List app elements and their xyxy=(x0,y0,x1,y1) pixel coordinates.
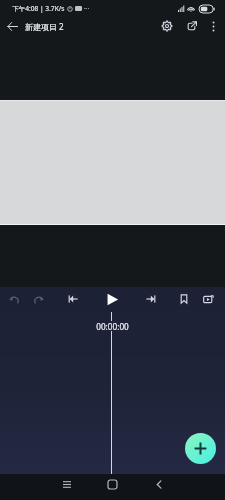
staticText: 下午4:08 | 3.7K/s xyxy=(12,4,65,13)
button[interactable]: Settings xyxy=(157,16,177,36)
staticText: 00:00:00 xyxy=(96,321,129,331)
button[interactable]: More options xyxy=(205,18,221,34)
button[interactable]: Play xyxy=(102,289,122,309)
button[interactable]: Bookmark xyxy=(175,290,193,308)
button[interactable]: Redo xyxy=(28,289,48,309)
button[interactable]: Recents xyxy=(52,471,82,497)
button[interactable]: Export xyxy=(181,16,201,36)
button[interactable]: Back xyxy=(2,16,22,36)
button[interactable]: Home xyxy=(97,471,127,497)
button[interactable]: Skip to start xyxy=(64,290,82,308)
staticText: 新建项目 2 xyxy=(25,21,64,32)
button[interactable]: Undo xyxy=(4,289,24,309)
button[interactable]: Add media xyxy=(185,433,216,464)
button[interactable]: Skip to end xyxy=(142,290,160,308)
button[interactable]: Preview xyxy=(199,290,217,308)
button[interactable]: Back xyxy=(144,471,174,497)
staticText: ··· xyxy=(84,4,90,13)
